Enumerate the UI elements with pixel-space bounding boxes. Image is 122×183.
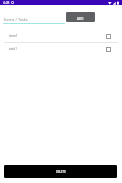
button[interactable]: task1	[0, 43, 122, 55]
staticText: item1	[9, 34, 18, 38]
button[interactable]: item1	[0, 30, 122, 42]
staticText: DELETE	[56, 170, 66, 174]
staticText: 4:28	[3, 1, 10, 5]
button[interactable]: DELETE	[4, 165, 117, 178]
staticText: Items / Tasks	[4, 17, 28, 22]
staticText: task1	[9, 47, 17, 51]
button[interactable]: Items / Tasks	[3, 13, 65, 24]
staticText: ADD	[77, 17, 84, 21]
button[interactable]: Toggle item1	[106, 34, 111, 39]
button[interactable]: Toggle task1	[106, 47, 111, 52]
button[interactable]: ADD	[66, 12, 95, 22]
